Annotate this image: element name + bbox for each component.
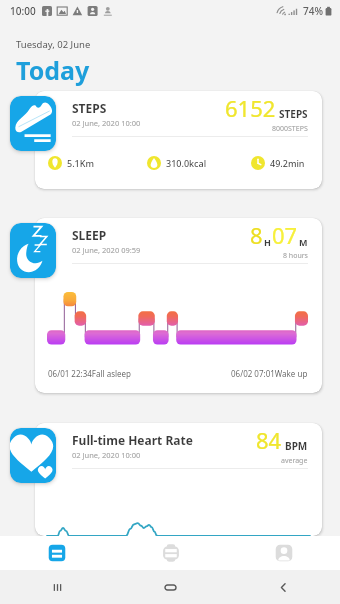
staticText: SLEEP: [72, 227, 107, 243]
staticText: 74%: [303, 4, 323, 18]
staticText: H: [264, 236, 271, 248]
staticText: 5.1Km: [67, 157, 94, 169]
staticText: 84: [256, 425, 282, 455]
staticText: Today: [16, 53, 90, 87]
staticText: 02 June, 2020 10:00: [72, 118, 141, 128]
button[interactable]: Dashboard: [0, 536, 114, 570]
staticText: 02 June, 2020 10:00: [72, 450, 141, 460]
button[interactable]: Profile: [227, 536, 340, 570]
button[interactable]: Home: [114, 570, 227, 604]
staticText: BPM: [285, 439, 308, 453]
staticText: Full-time Heart Rate: [72, 432, 193, 448]
button[interactable]: Recents: [0, 570, 114, 604]
staticText: STEPS: [279, 107, 308, 121]
staticText: Tuesday, 02 June: [16, 38, 91, 51]
staticText: STEPS: [72, 100, 107, 116]
staticText: 8 hours: [283, 251, 308, 261]
button[interactable]: STEPS: [35, 91, 322, 189]
button[interactable]: Full-time Heart Rate: [35, 423, 322, 536]
staticText: 06/01 22:34Fall asleep: [48, 368, 131, 379]
staticText: 02 June, 2020 09:59: [72, 245, 141, 255]
staticText: 49.2min: [270, 157, 305, 169]
staticText: 06/02 07:01Wake up: [231, 368, 308, 379]
button[interactable]: SLEEP: [35, 218, 322, 393]
button[interactable]: Back: [227, 570, 340, 604]
staticText: 310.0kcal: [166, 157, 207, 169]
staticText: M: [299, 236, 308, 248]
staticText: 8: [250, 220, 263, 250]
staticText: 10:00: [10, 4, 36, 18]
staticText: average: [281, 456, 308, 466]
staticText: 07: [272, 220, 298, 250]
staticText: 6152: [225, 93, 276, 123]
staticText: 8000STEPS: [272, 124, 308, 134]
button[interactable]: Devices: [114, 536, 227, 570]
